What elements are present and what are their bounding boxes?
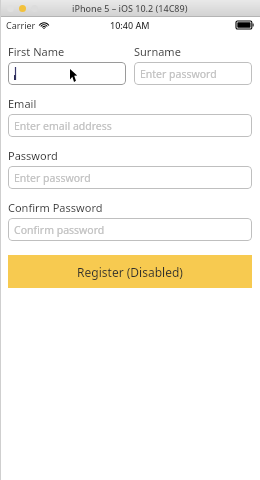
- button[interactable]: Enter password: [134, 62, 252, 85]
- staticText: Password: [8, 148, 58, 163]
- staticText: iPhone 5 – iOS 10.2 (14C89): [72, 2, 188, 14]
- button[interactable]: Enter email address: [8, 114, 252, 137]
- staticText: Surname: [134, 44, 181, 59]
- button[interactable]: Register (Disabled): [8, 255, 252, 288]
- staticText: Register (Disabled): [77, 264, 183, 280]
- staticText: Confirm password: [14, 223, 105, 237]
- staticText: Enter email address: [14, 119, 112, 133]
- button[interactable]: Enter password: [8, 166, 252, 189]
- staticText: First Name: [8, 44, 65, 59]
- staticText: 10:40 AM: [110, 19, 150, 31]
- staticText: Enter password: [14, 171, 91, 185]
- staticText: Carrier: [6, 19, 36, 31]
- staticText: Email: [8, 96, 37, 111]
- button[interactable]: Confirm password: [8, 218, 252, 241]
- button[interactable]: [8, 62, 126, 85]
- staticText: Confirm Password: [8, 200, 103, 215]
- staticText: Enter password: [140, 67, 217, 81]
